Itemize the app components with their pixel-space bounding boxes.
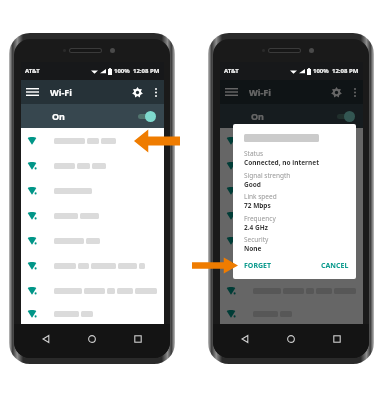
button[interactable]: On xyxy=(21,104,164,128)
staticText: FORGET xyxy=(244,261,271,271)
button[interactable]: CANCEL xyxy=(308,258,352,274)
button[interactable]: Recents xyxy=(127,328,149,350)
staticText: Signal strength xyxy=(244,171,291,180)
button[interactable] xyxy=(21,228,164,253)
button[interactable] xyxy=(21,128,164,153)
staticText: Connected, no internet xyxy=(244,158,319,167)
staticText: 12:08 PM xyxy=(332,67,359,75)
button[interactable]: Back xyxy=(35,328,57,350)
staticText: On xyxy=(52,110,65,122)
button[interactable] xyxy=(220,278,363,303)
button[interactable] xyxy=(21,178,164,203)
staticText: 12:08 PM xyxy=(133,67,160,75)
staticText: CANCEL xyxy=(321,261,349,271)
button[interactable]: Recents xyxy=(326,328,348,350)
staticText: None xyxy=(244,244,262,253)
button[interactable]: Back xyxy=(234,328,256,350)
button[interactable]: More options xyxy=(347,80,362,104)
staticText: Status xyxy=(244,149,264,158)
staticText: Link speed xyxy=(244,192,277,201)
button[interactable] xyxy=(21,203,164,228)
button[interactable] xyxy=(220,303,363,324)
staticText: AT&T xyxy=(224,67,239,75)
button[interactable] xyxy=(220,153,363,178)
button[interactable] xyxy=(220,128,363,153)
staticText: 100% xyxy=(114,67,130,75)
button[interactable]: Home xyxy=(280,328,302,350)
button[interactable]: FORGET xyxy=(241,258,281,274)
button[interactable]: Menu xyxy=(220,80,243,104)
staticText: Frequency xyxy=(244,214,276,223)
button[interactable] xyxy=(21,153,164,178)
button[interactable] xyxy=(21,253,164,278)
staticText: On xyxy=(251,110,264,122)
button[interactable] xyxy=(220,203,363,228)
button[interactable]: Settings xyxy=(126,80,148,104)
button[interactable] xyxy=(21,303,164,324)
button[interactable]: Settings xyxy=(325,80,347,104)
staticText: Wi-Fi xyxy=(249,86,271,98)
button[interactable]: Home xyxy=(81,328,103,350)
staticText: Wi-Fi xyxy=(50,86,72,98)
staticText: 2.4 GHz xyxy=(244,223,268,232)
button[interactable]: Menu xyxy=(21,80,44,104)
button[interactable] xyxy=(21,278,164,303)
staticText: 72 Mbps xyxy=(244,201,271,210)
button[interactable] xyxy=(220,253,363,278)
staticText: Security xyxy=(244,235,269,244)
staticText: AT&T xyxy=(25,67,40,75)
button[interactable]: More options xyxy=(148,80,163,104)
staticText: Good xyxy=(244,180,261,189)
button[interactable] xyxy=(220,228,363,253)
staticText: 100% xyxy=(313,67,329,75)
button[interactable]: On xyxy=(220,104,363,128)
button[interactable] xyxy=(220,178,363,203)
